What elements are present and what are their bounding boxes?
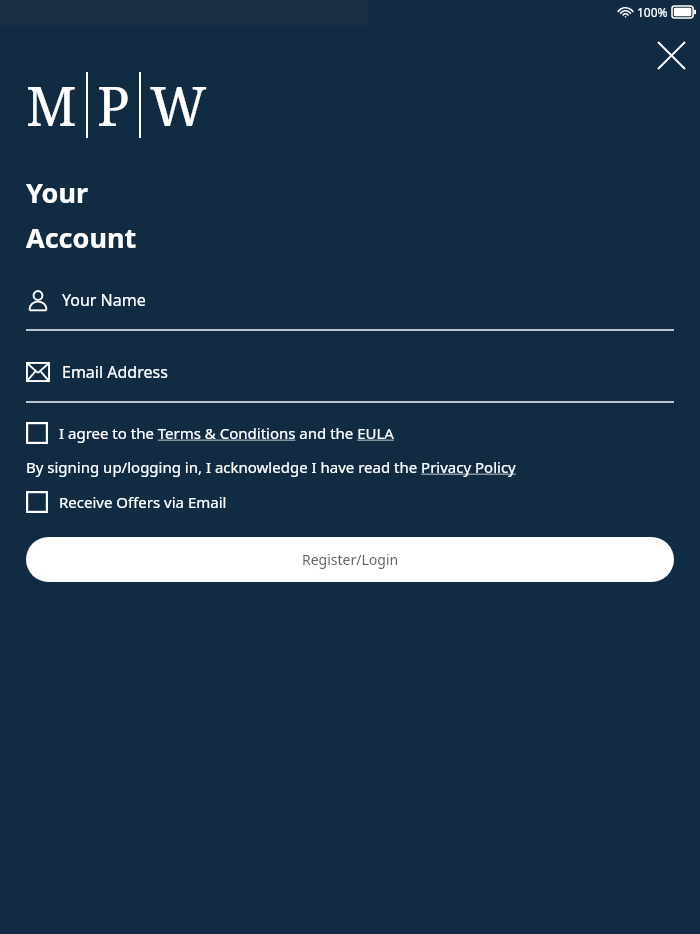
- button[interactable]: By signing up/logging in, I acknowledge …: [26, 457, 674, 477]
- staticText: Receive Offers via Email: [59, 492, 227, 512]
- button[interactable]: Email Address: [26, 355, 674, 403]
- button[interactable]: Close: [645, 29, 697, 81]
- staticText: Account: [26, 219, 137, 256]
- button[interactable]: Your Name: [26, 283, 674, 331]
- button[interactable]: Receive Offers via Email: [26, 487, 674, 517]
- staticText: M: [26, 68, 77, 142]
- staticText: By signing up/logging in, I acknowledge …: [26, 457, 516, 477]
- staticText: I agree to the Terms & Conditions and th…: [59, 423, 394, 443]
- staticText: Register/Login: [302, 550, 399, 569]
- staticText: Your: [26, 174, 89, 211]
- staticText: Email Address: [62, 361, 168, 383]
- staticText: Your Name: [62, 289, 146, 311]
- button[interactable]: Register/Login: [26, 537, 674, 582]
- staticText: 100%: [637, 4, 668, 20]
- button[interactable]: I agree to the Terms & Conditions and th…: [26, 417, 674, 449]
- staticText: P: [97, 68, 130, 142]
- staticText: W: [150, 68, 207, 142]
